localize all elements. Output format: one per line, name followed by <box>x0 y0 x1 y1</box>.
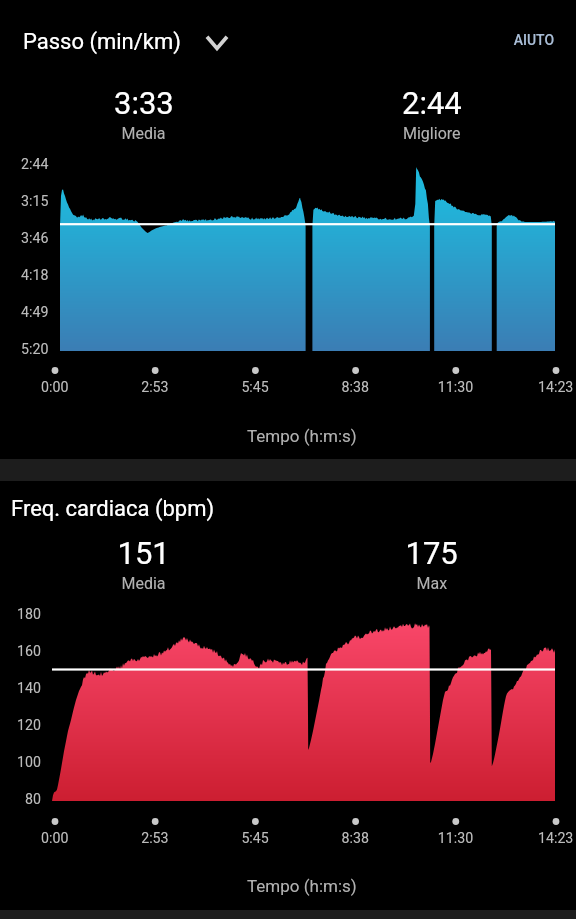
button[interactable] <box>12 18 232 64</box>
button[interactable] <box>0 481 576 541</box>
button[interactable]: AIUTO <box>502 24 564 58</box>
